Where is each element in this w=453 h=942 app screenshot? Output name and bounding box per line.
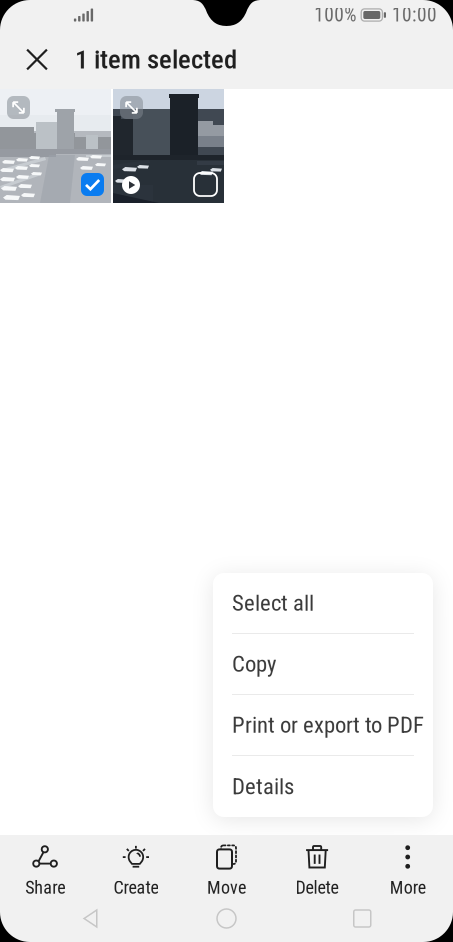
button[interactable]: Print or export to PDF bbox=[213, 695, 433, 756]
button[interactable]: More bbox=[362, 835, 453, 895]
button[interactable]: Recent apps bbox=[317, 895, 407, 942]
button[interactable]: Copy bbox=[213, 634, 433, 695]
staticText: 1 item selected bbox=[75, 44, 237, 75]
staticText: 100% bbox=[314, 4, 356, 26]
button[interactable]: Create bbox=[91, 835, 181, 895]
button[interactable]: Close selection bbox=[4, 30, 70, 89]
staticText: Delete bbox=[296, 877, 339, 898]
staticText: Details bbox=[232, 773, 294, 800]
staticText: Share bbox=[25, 877, 65, 898]
staticText: More bbox=[390, 877, 426, 898]
button[interactable]: Home bbox=[181, 895, 271, 942]
button[interactable]: Details bbox=[213, 756, 433, 817]
button[interactable]: Move bbox=[181, 835, 272, 895]
button[interactable]: Select all bbox=[213, 573, 433, 634]
staticText: Move bbox=[207, 877, 246, 898]
button[interactable]: Back bbox=[46, 895, 136, 942]
staticText: Print or export to PDF bbox=[232, 712, 424, 738]
button[interactable]: Share bbox=[0, 835, 91, 895]
staticText: Select all bbox=[232, 590, 314, 616]
staticText: Create bbox=[113, 877, 158, 898]
staticText: Copy bbox=[232, 651, 276, 677]
button[interactable]: Delete bbox=[272, 835, 362, 895]
staticText: 10:00 bbox=[392, 4, 437, 26]
